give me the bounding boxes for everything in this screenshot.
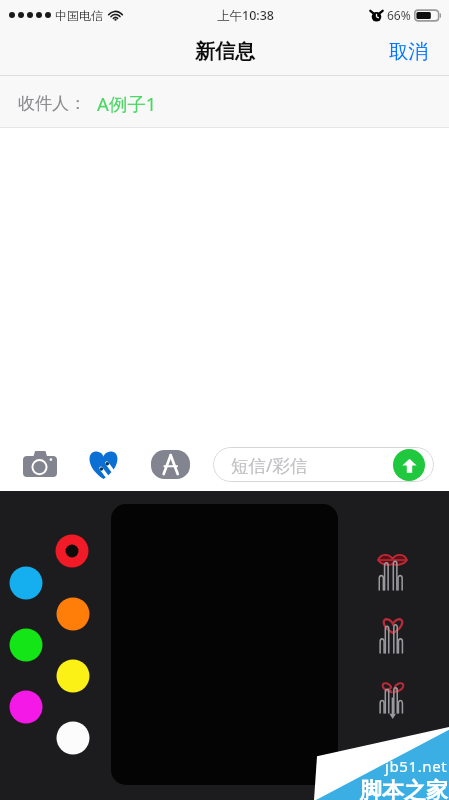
button[interactable]: Digital Touch (81, 442, 125, 486)
staticText: 中国电信 (55, 8, 103, 23)
button[interactable]: 短信/彩信 (213, 447, 434, 482)
button[interactable]: Send a heartbeat (378, 618, 408, 653)
button[interactable]: 取消 (375, 31, 449, 72)
staticText: A例子1 (97, 91, 157, 116)
staticText: 新信息 (195, 39, 255, 64)
staticText: 66% (387, 7, 411, 23)
button[interactable]: App Store (148, 442, 192, 486)
staticText: 短信/彩信 (231, 453, 308, 477)
button[interactable]: Drawing canvas (111, 504, 338, 785)
staticText: 上午10:38 (217, 7, 275, 24)
staticText: 脚本之家 (360, 777, 448, 800)
button[interactable]: Camera (18, 442, 62, 486)
button[interactable]: Send a broken heart (378, 682, 408, 719)
button[interactable]: Send (393, 449, 425, 481)
staticText: 收件人： (18, 93, 86, 114)
staticText: 取消 (389, 39, 428, 64)
staticText: jb51.net (385, 756, 448, 776)
button[interactable]: Send a kiss (377, 553, 408, 590)
